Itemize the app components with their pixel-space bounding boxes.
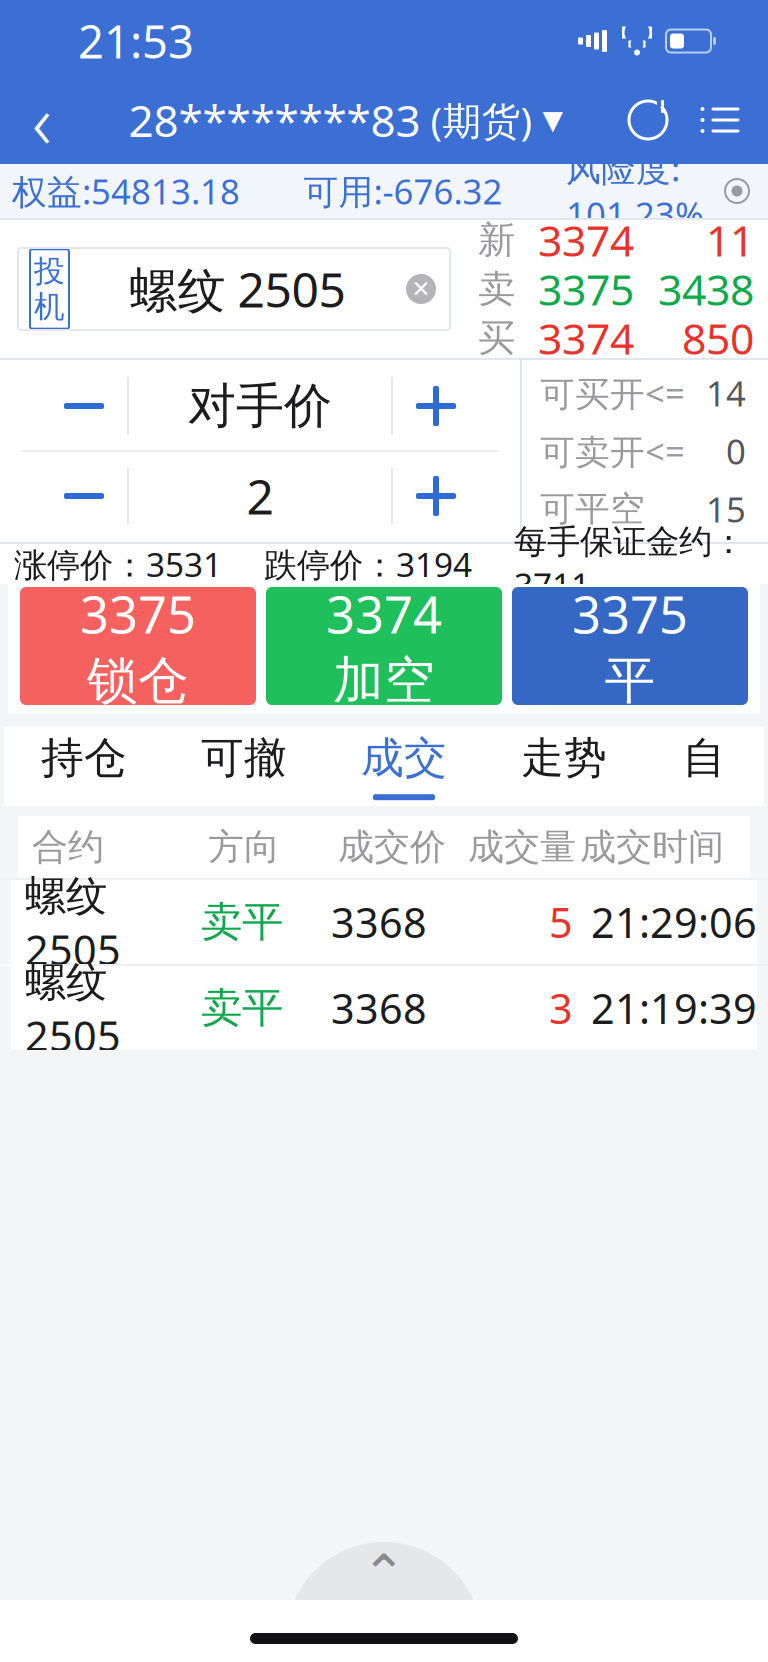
staticText: 11	[706, 212, 754, 268]
staticText: 跌停价：3194	[264, 542, 472, 586]
staticText: 3374	[538, 310, 634, 366]
button[interactable]: 3375	[20, 587, 256, 705]
staticText: 对手价	[188, 376, 332, 435]
staticText: 3375	[80, 580, 196, 647]
button[interactable]: 3374	[266, 587, 502, 705]
staticText: 可卖开<=	[540, 428, 685, 474]
staticText: (期货)	[420, 94, 542, 146]
staticText: 15	[706, 486, 746, 532]
staticText: 5	[549, 895, 573, 949]
button[interactable]: 3375	[512, 587, 748, 705]
button[interactable]: 走势	[484, 726, 644, 806]
staticText: 自	[682, 732, 725, 784]
button[interactable]: 28********83	[128, 81, 563, 159]
button[interactable]: Decrease	[41, 362, 127, 450]
staticText: ⌃	[361, 1544, 406, 1604]
staticText: 可撤	[201, 732, 287, 784]
staticText: 平	[604, 649, 655, 712]
button[interactable]: 持仓	[4, 726, 164, 806]
staticText: 卖平	[201, 983, 283, 1033]
staticText: 方向	[208, 825, 280, 869]
staticText: 权益:54813.18	[12, 168, 240, 214]
staticText: 0	[726, 428, 746, 474]
button[interactable]: Menu	[684, 84, 756, 156]
button[interactable]: 自	[644, 726, 764, 806]
staticText: 加空	[333, 649, 435, 712]
button[interactable]: 成交	[324, 726, 484, 806]
staticText: 3374	[326, 580, 442, 647]
staticText: 成交时间	[580, 825, 724, 869]
staticText: 3374	[538, 212, 634, 268]
staticText: 28********83	[128, 91, 420, 149]
staticText: 3	[549, 981, 573, 1035]
staticText: 3375	[572, 580, 688, 647]
staticText: 风险度:101.23%	[566, 145, 704, 237]
staticText: 成交价	[338, 825, 446, 869]
button[interactable]: 螺纹 2505	[11, 966, 757, 1050]
staticText: 3375	[538, 261, 634, 317]
staticText: 2	[246, 464, 273, 528]
staticText: 合约	[32, 825, 104, 869]
staticText: 螺纹 2505	[129, 257, 345, 321]
staticText: 3368	[331, 981, 427, 1035]
staticText: 走势	[521, 732, 607, 784]
button[interactable]: Increase	[393, 452, 479, 540]
staticText: 21:19:39	[591, 981, 757, 1035]
button[interactable]: Increase	[393, 362, 479, 450]
staticText: 投	[34, 252, 65, 290]
staticText: 锁仓	[87, 649, 189, 712]
staticText: 成交	[361, 732, 447, 784]
button[interactable]: 螺纹 2505	[11, 880, 757, 964]
staticText: 买	[478, 315, 515, 361]
staticText: 螺纹 2505	[25, 867, 121, 977]
staticText: 可用:-676.32	[303, 168, 502, 214]
staticText: 持仓	[41, 732, 127, 784]
staticText: 机	[34, 288, 65, 326]
staticText: 每手保证金约：3711	[514, 521, 745, 607]
staticText: ▼	[542, 105, 563, 135]
staticText: 螺纹 2505	[25, 953, 121, 1063]
staticText: ‹	[32, 70, 52, 170]
staticText: 850	[682, 310, 754, 366]
staticText: 卖平	[201, 897, 283, 947]
staticText: 可平空	[540, 488, 645, 530]
button[interactable]: 对手价	[129, 362, 391, 450]
staticText: 可买开<=	[540, 370, 685, 416]
staticText: 3438	[658, 261, 754, 317]
button[interactable]: 可撤	[164, 726, 324, 806]
staticText: 21:29:06	[591, 895, 757, 949]
staticText: ✕	[411, 276, 430, 302]
button[interactable]: Expand panel	[286, 1542, 482, 1600]
button[interactable]: Refresh	[612, 84, 684, 156]
staticText: 成交量	[468, 825, 576, 869]
button[interactable]: Back	[4, 84, 80, 156]
button[interactable]: Decrease	[41, 452, 127, 540]
staticText: 14	[706, 370, 746, 416]
button[interactable]: Toggle visibility	[720, 174, 754, 208]
staticText: 涨停价：3531	[14, 542, 222, 586]
staticText: 21:53	[78, 11, 194, 71]
staticText: 3368	[331, 895, 427, 949]
staticText: 卖	[478, 266, 515, 312]
button[interactable]: 投	[18, 248, 450, 330]
staticText: 新	[478, 217, 515, 263]
button[interactable]: 2	[129, 452, 391, 540]
